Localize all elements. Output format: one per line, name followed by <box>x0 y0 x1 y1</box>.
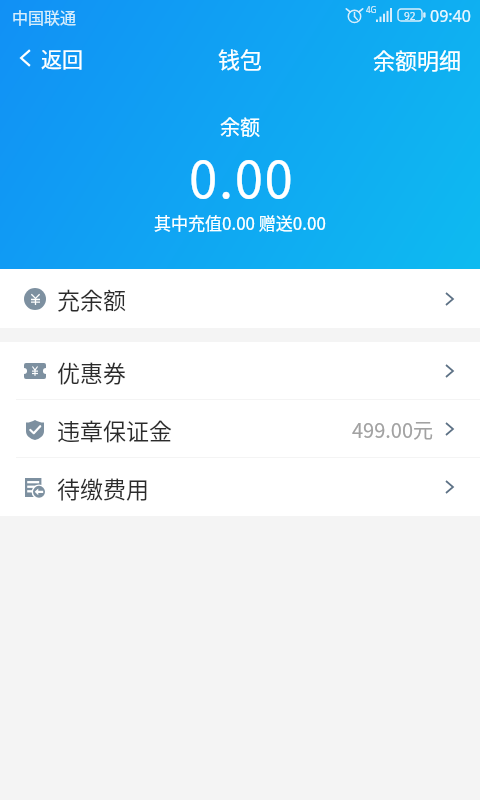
button[interactable]: 返回 <box>0 37 99 79</box>
staticText: 中国联通 <box>12 5 77 28</box>
staticText: 返回 <box>41 43 83 73</box>
staticText: 4G <box>366 4 377 15</box>
staticText: 余额 <box>220 112 260 141</box>
staticText: 优惠券 <box>57 355 126 388</box>
staticText: 499.00元 <box>352 415 434 444</box>
button[interactable]: 待缴费用 <box>0 458 480 516</box>
button[interactable]: 优惠券 <box>0 342 480 400</box>
button[interactable]: 违章保证金 <box>0 400 480 458</box>
staticText: 充余额 <box>57 282 126 315</box>
staticText: 待缴费用 <box>57 471 149 504</box>
staticText: 其中充值0.00 赠送0.00 <box>154 210 326 235</box>
staticText: 92 <box>404 9 416 23</box>
staticText: 违章保证金 <box>57 413 172 446</box>
button[interactable]: 余额明细 <box>357 35 480 83</box>
other: 返回 <box>20 49 31 67</box>
staticText: 钱包 <box>218 42 263 74</box>
button[interactable]: 充余额 <box>0 269 480 328</box>
staticText: 0.00 <box>189 139 295 213</box>
staticText: 09:40 <box>430 5 471 27</box>
